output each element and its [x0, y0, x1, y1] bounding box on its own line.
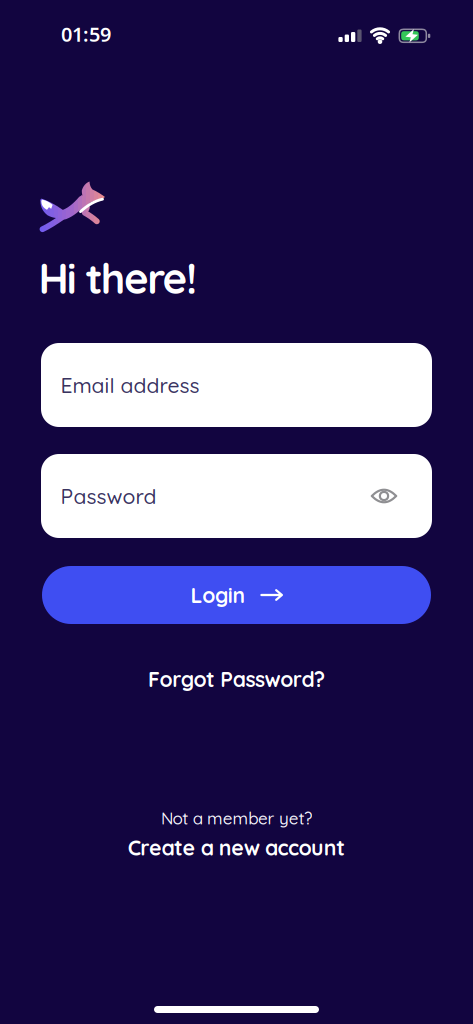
staticText: Create a new account	[128, 834, 345, 861]
button[interactable]: Login	[42, 566, 431, 624]
staticText: Password	[60, 483, 156, 509]
button[interactable]: Email address	[41, 343, 432, 427]
staticText: Not a member yet?	[161, 807, 312, 829]
button[interactable]: Forgot Password?	[148, 666, 325, 692]
staticText: Forgot Password?	[148, 666, 325, 692]
button[interactable]: Create a new account	[128, 834, 345, 861]
staticText: 01:59	[61, 21, 111, 47]
staticText: Email address	[60, 372, 199, 398]
button[interactable]: Password	[41, 454, 432, 538]
staticText: Hi there!	[38, 252, 197, 304]
staticText: Login	[191, 582, 245, 608]
